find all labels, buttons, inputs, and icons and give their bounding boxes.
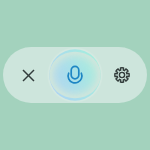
button[interactable]: Microphone bbox=[52, 52, 98, 98]
button[interactable]: Settings bbox=[105, 58, 139, 92]
button[interactable]: Close bbox=[11, 58, 45, 92]
